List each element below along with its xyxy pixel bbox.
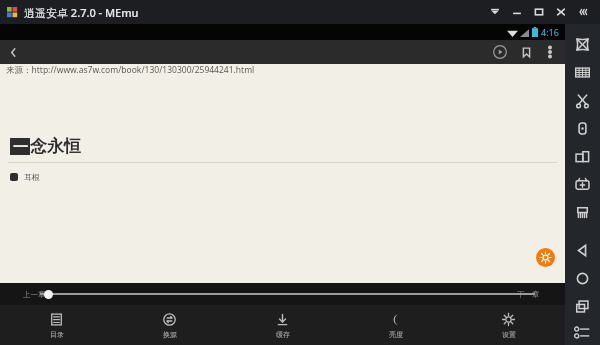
button[interactable]: Home — [565, 264, 600, 292]
staticText: 4:16 — [541, 26, 559, 38]
button[interactable]: Close — [550, 2, 572, 22]
button[interactable]: 换源 — [113, 305, 226, 345]
button[interactable]: Menu — [484, 2, 506, 22]
button[interactable]: Shared folder — [565, 142, 600, 170]
button[interactable]: Read aloud — [487, 40, 513, 64]
button[interactable]: Recents — [565, 292, 600, 320]
button[interactable]: Fullscreen — [565, 30, 600, 58]
button[interactable]: 设置 — [452, 305, 565, 345]
button[interactable]: More options — [539, 40, 561, 64]
button[interactable]: 缓存 — [226, 305, 339, 345]
button[interactable]: Clean — [565, 198, 600, 226]
button[interactable]: Minimize — [506, 2, 528, 22]
staticText: 念永恒 — [30, 136, 81, 157]
button[interactable]: Collapse — [572, 2, 594, 22]
button[interactable]: Back — [565, 236, 600, 264]
staticText: 上一章 — [23, 290, 46, 299]
button[interactable]: Operation record — [565, 320, 600, 345]
button[interactable]: Scissors — [565, 86, 600, 114]
staticText: 缓存 — [276, 330, 290, 339]
staticText: 下一章 — [517, 290, 540, 299]
staticText: 设置 — [502, 330, 516, 339]
staticText: 一 — [13, 138, 28, 155]
button[interactable]: Back — [0, 40, 26, 64]
button[interactable]: 目录 — [0, 305, 113, 345]
button[interactable]: Bookmark — [513, 40, 539, 64]
button[interactable]: Shake — [565, 114, 600, 142]
staticText: 来源：http://www.as7w.com/book/130/130300/2… — [6, 64, 255, 76]
staticText: 耳根 — [24, 172, 40, 182]
staticText: 逍遥安卓 2.7.0 - MEmu — [24, 5, 139, 20]
button[interactable]: Chapter progress — [40, 285, 535, 303]
button[interactable]: Maximize — [528, 2, 550, 22]
button[interactable]: Keyboard — [565, 58, 600, 86]
staticText: 目录 — [50, 330, 64, 339]
staticText: 换源 — [163, 330, 177, 339]
button[interactable]: Brightness — [536, 248, 555, 267]
button[interactable]: 亮度 — [339, 305, 452, 345]
button[interactable]: Install APK — [565, 170, 600, 198]
staticText: 亮度 — [389, 330, 403, 339]
